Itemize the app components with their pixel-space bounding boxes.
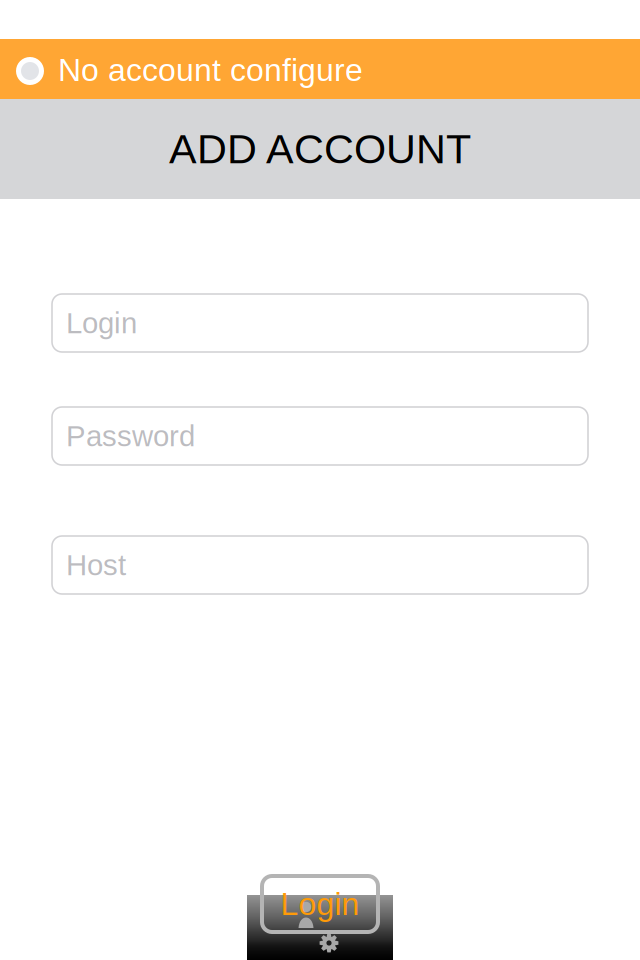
staticText: Password xyxy=(66,420,195,452)
staticText: ADD ACCOUNT xyxy=(169,126,471,172)
staticText: Login xyxy=(66,307,137,339)
staticText: Host xyxy=(66,549,126,581)
staticText: Login xyxy=(280,886,359,922)
staticText: No account configure xyxy=(58,52,363,88)
button[interactable]: Login xyxy=(260,874,380,934)
